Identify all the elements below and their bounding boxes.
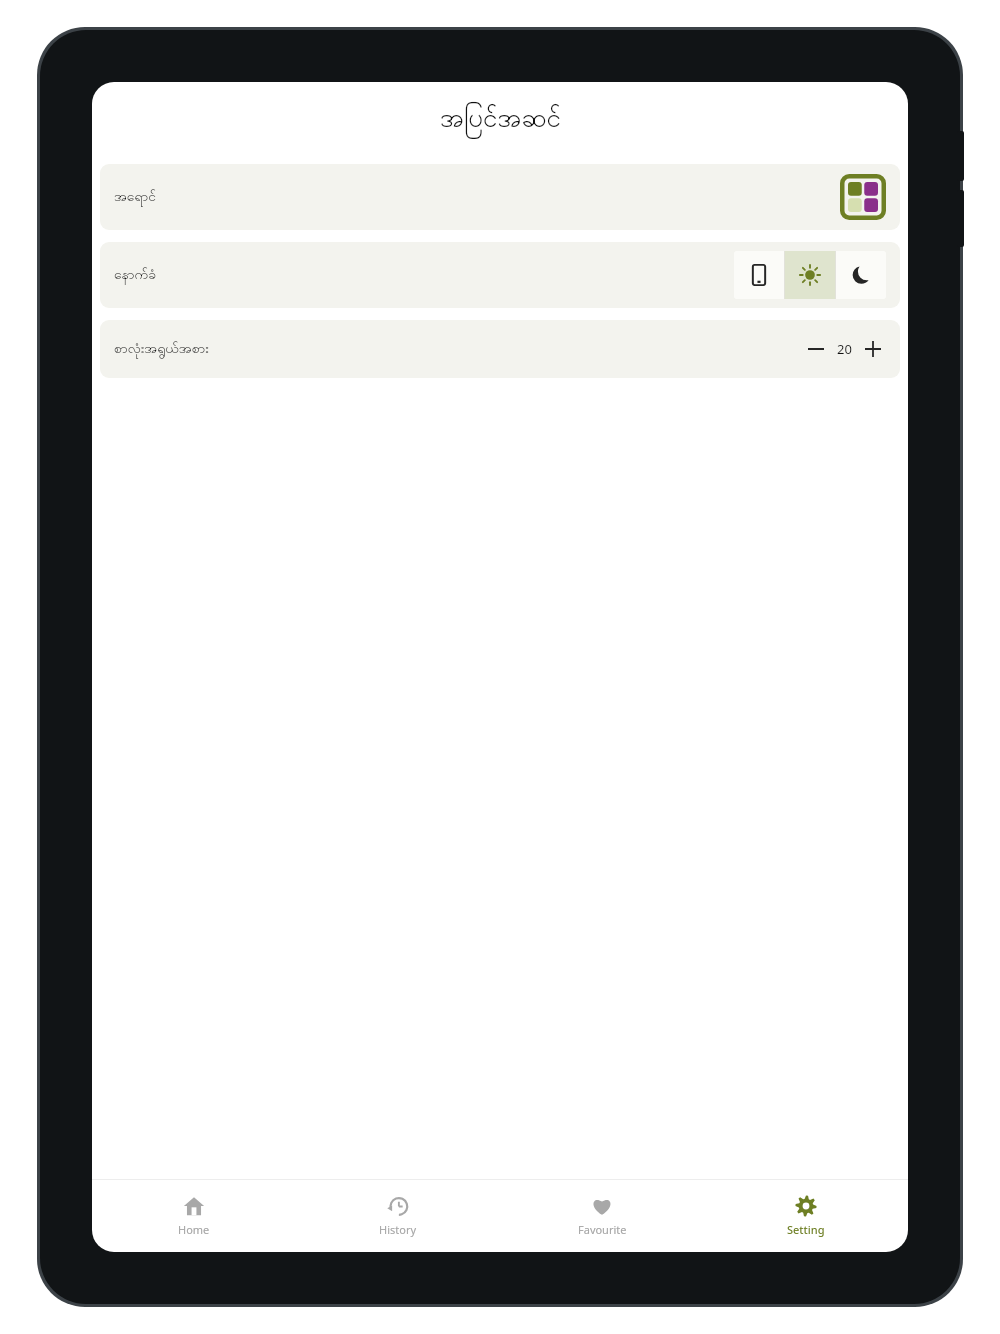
button[interactable]: History: [296, 1180, 500, 1252]
button[interactable]: Colour theme: [840, 174, 886, 220]
staticText: အရောင်: [114, 187, 157, 208]
staticText: Favourite: [578, 1222, 627, 1237]
button[interactable]: အရောင်: [100, 164, 900, 230]
staticText: Home: [178, 1222, 210, 1237]
button[interactable]: Decrease font size: [803, 336, 829, 362]
button[interactable]: စာလုံးအရွယ်အစား: [100, 320, 900, 378]
staticText: အပြင်အဆင်: [440, 101, 561, 139]
staticText: နောက်ခံ: [114, 265, 157, 286]
staticText: Setting: [787, 1222, 825, 1237]
button[interactable]: Light theme: [785, 251, 835, 299]
staticText: 20: [837, 340, 852, 358]
button[interactable]: Dark theme: [836, 251, 886, 299]
button[interactable]: Increase font size: [860, 336, 886, 362]
button[interactable]: Favourite: [500, 1180, 704, 1252]
staticText: History: [379, 1222, 417, 1237]
button[interactable]: Setting: [704, 1180, 908, 1252]
button[interactable]: Home: [92, 1180, 296, 1252]
button[interactable]: System theme: [734, 251, 784, 299]
staticText: စာလုံးအရွယ်အစား: [114, 339, 209, 360]
button[interactable]: နောက်ခံ: [100, 242, 900, 308]
